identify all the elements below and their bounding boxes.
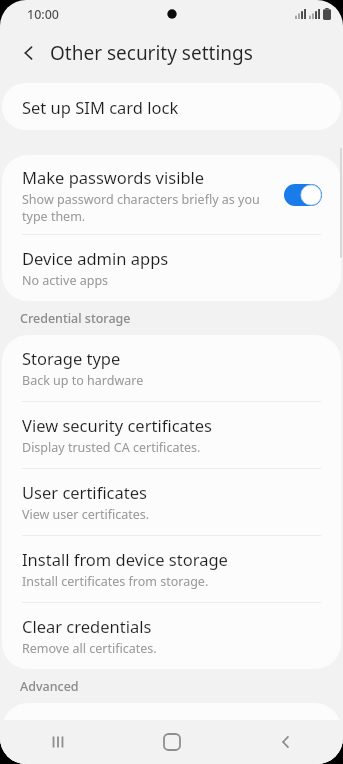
button[interactable]: View security certificates [2,402,341,468]
staticText: Clear credentials [22,615,152,637]
button[interactable]: Recents [0,720,115,764]
staticText: Install from device storage [22,548,228,570]
button[interactable]: Back [12,36,46,70]
staticText: No active apps [22,272,109,289]
staticText: Show password characters briefly as you … [22,191,269,224]
staticText: Remove all certificates. [22,640,157,657]
button[interactable]: Make passwords visible [2,155,341,234]
staticText: Back up to hardware [22,372,144,389]
button[interactable]: Trust agents [2,703,341,747]
button[interactable]: Make passwords visible toggle [281,180,325,210]
button[interactable]: Device admin apps [2,235,341,301]
staticText: Credential storage [20,310,131,327]
button[interactable]: Clear credentials [2,603,341,669]
staticText: View security certificates [22,414,212,436]
button[interactable]: Home [115,720,229,764]
staticText: Trust agents [22,714,119,736]
staticText: Set up SIM card lock [22,96,179,118]
staticText: Make passwords visible [22,166,205,188]
button[interactable]: Set up SIM card lock [2,83,341,130]
staticText: Device admin apps [22,247,169,269]
button[interactable]: Storage type [2,335,341,401]
staticText: Other security settings [50,40,253,66]
button[interactable]: Back [229,720,343,764]
staticText: 10:00 [27,6,60,23]
button[interactable]: User certificates [2,469,341,535]
staticText: Advanced [20,678,79,695]
staticText: Storage type [22,347,121,369]
staticText: View user certificates. [22,506,150,523]
staticText: Install certificates from storage. [22,573,209,590]
staticText: User certificates [22,481,147,503]
staticText: Display trusted CA certificates. [22,439,201,456]
button[interactable]: Install from device storage [2,536,341,602]
